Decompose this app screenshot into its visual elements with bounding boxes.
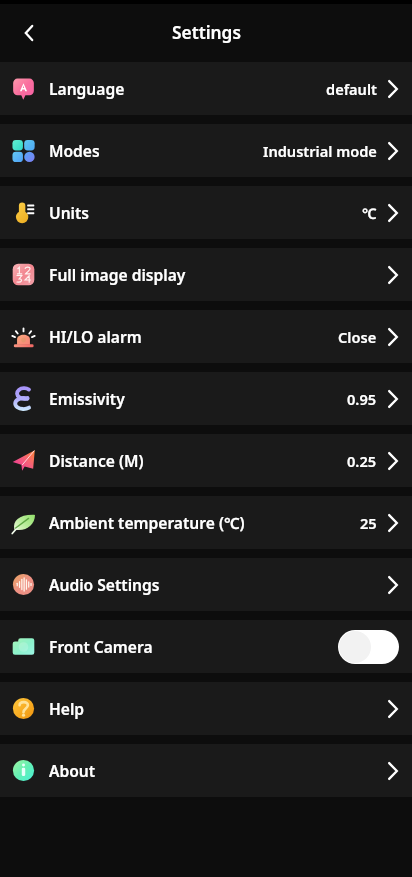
staticText: Close [338, 327, 377, 347]
staticText: Help [49, 698, 85, 719]
staticText: Units [49, 202, 90, 223]
staticText: About [49, 760, 96, 781]
staticText: Settings [172, 21, 241, 45]
button[interactable]: Distance (M) [0, 434, 412, 487]
button[interactable]: Full image display [0, 248, 412, 301]
staticText: Ambient temperature (℃) [49, 512, 245, 533]
staticText: 0.25 [347, 451, 377, 471]
button[interactable]: Back [14, 18, 44, 48]
button[interactable]: Units [0, 186, 412, 239]
staticText: Distance (M) [49, 450, 144, 471]
button[interactable]: Ambient temperature (℃) [0, 496, 412, 549]
staticText: Audio Settings [49, 574, 160, 595]
button[interactable]: Front Camera [0, 620, 412, 673]
button[interactable]: Modes [0, 124, 412, 177]
staticText: ℃ [362, 203, 377, 223]
button[interactable]: About [0, 744, 412, 797]
button[interactable]: Help [0, 682, 412, 735]
staticText: Emissivity [49, 388, 125, 409]
staticText: 0.95 [347, 389, 377, 409]
button[interactable]: Audio Settings [0, 558, 412, 611]
staticText: default [326, 79, 377, 99]
staticText: 25 [360, 513, 377, 533]
staticText: HI/LO alarm [49, 326, 142, 347]
staticText: Industrial mode [263, 141, 377, 161]
staticText: Modes [49, 140, 100, 161]
button[interactable]: Language [0, 62, 412, 115]
staticText: Full image display [49, 264, 186, 285]
button[interactable]: Emissivity [0, 372, 412, 425]
button[interactable]: HI/LO alarm [0, 310, 412, 363]
staticText: Front Camera [49, 636, 153, 657]
staticText: Language [49, 78, 125, 99]
button[interactable]: Front camera toggle [338, 630, 399, 664]
